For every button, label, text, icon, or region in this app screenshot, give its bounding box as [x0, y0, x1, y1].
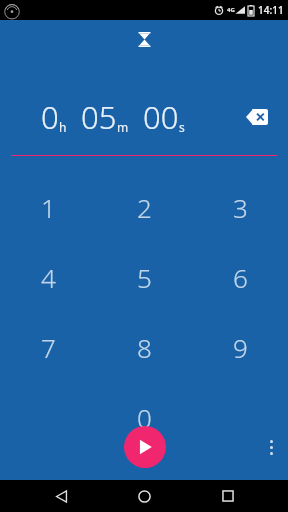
button[interactable]: 4	[0, 242, 96, 312]
button[interactable]: 1	[0, 172, 96, 242]
button[interactable]: More options	[254, 423, 288, 471]
staticText: 0	[137, 400, 152, 435]
button[interactable]: 3	[192, 172, 288, 242]
staticText: 8	[137, 330, 152, 365]
button[interactable]: Recent apps	[205, 480, 251, 512]
staticText: h	[59, 119, 67, 135]
staticText: 6	[233, 260, 248, 295]
staticText: 3	[233, 190, 248, 225]
button[interactable]: 6	[192, 242, 288, 312]
button[interactable]: Home	[121, 480, 167, 512]
staticText: 4	[41, 260, 56, 295]
staticText: 14:11	[258, 3, 284, 17]
button[interactable]: Start timer	[124, 426, 166, 468]
staticText: 00	[143, 96, 179, 138]
button[interactable]: Timer	[129, 24, 159, 54]
staticText: 9	[233, 330, 248, 365]
button[interactable]: 5	[96, 242, 192, 312]
button[interactable]: 2	[96, 172, 192, 242]
staticText: 1	[41, 190, 56, 225]
button[interactable]: 8	[96, 312, 192, 382]
staticText: 0	[41, 96, 59, 138]
staticText: 5	[137, 260, 152, 295]
button[interactable]: 9	[192, 312, 288, 382]
button[interactable]: 0	[96, 382, 192, 452]
staticText: 2	[137, 190, 152, 225]
button[interactable]: 7	[0, 312, 96, 382]
staticText: 05	[81, 96, 117, 138]
button[interactable]: Backspace	[226, 97, 288, 137]
staticText: 7	[41, 330, 56, 365]
button[interactable]: Back	[38, 480, 84, 512]
staticText: s	[179, 119, 185, 135]
staticText: m	[117, 119, 129, 135]
staticText: 4G	[227, 6, 235, 14]
